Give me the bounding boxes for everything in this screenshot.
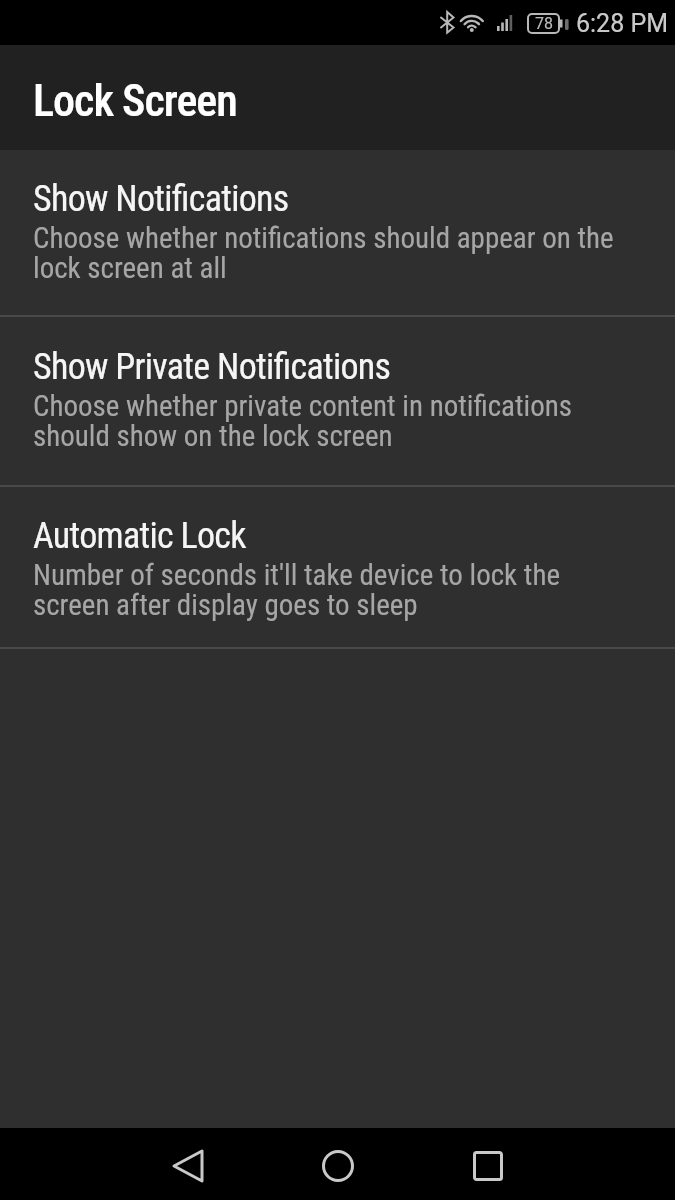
button[interactable] [148, 1128, 228, 1200]
button[interactable]: Automatic Lock [0, 487, 675, 647]
staticText: Number of seconds it'll take device to l… [33, 558, 560, 622]
button[interactable] [298, 1128, 378, 1200]
button[interactable]: Show Private Notifications [0, 317, 675, 485]
staticText: Lock Screen [33, 75, 237, 127]
staticText: Show Private Notifications [33, 346, 391, 388]
staticText: Choose whether private content in notifi… [33, 389, 573, 453]
staticText: Show Notifications [33, 178, 289, 220]
button[interactable]: Show Notifications [0, 150, 675, 315]
button[interactable] [448, 1128, 528, 1200]
staticText: 78 [535, 14, 553, 33]
staticText: Automatic Lock [33, 515, 246, 557]
staticText: 6:28 PM [576, 9, 669, 38]
staticText: Choose whether notifications should appe… [33, 221, 614, 285]
